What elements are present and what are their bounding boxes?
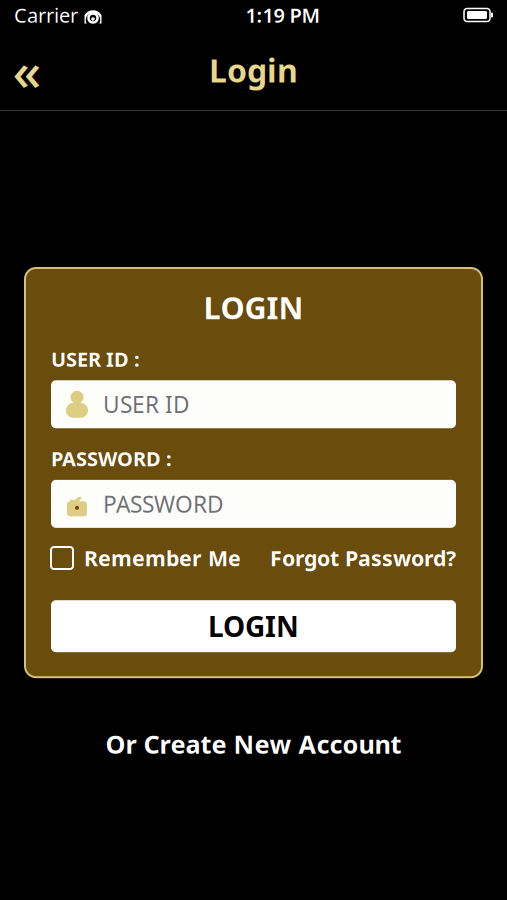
staticText: USER ID — [103, 389, 190, 419]
staticText: « — [12, 35, 41, 105]
button[interactable]: Forgot Password? — [270, 544, 456, 572]
button[interactable]: Or Create New Account — [89, 717, 417, 771]
staticText: USER ID : — [51, 346, 140, 372]
staticText: PASSWORD : — [51, 445, 172, 472]
staticText: LOGIN — [203, 287, 303, 328]
button[interactable]: LOGIN — [51, 600, 456, 652]
staticText: 1:19 PM — [245, 2, 320, 28]
button[interactable]: Remember Me — [51, 544, 241, 572]
staticText: Or Create New Account — [105, 727, 401, 761]
staticText: Forgot Password? — [270, 544, 456, 572]
button[interactable]: Back — [0, 43, 54, 97]
staticText: LOGIN — [208, 608, 299, 645]
staticText: Login — [209, 49, 298, 91]
staticText: Carrier — [14, 2, 78, 28]
staticText: Remember Me — [84, 544, 241, 572]
staticText: PASSWORD — [103, 489, 224, 519]
